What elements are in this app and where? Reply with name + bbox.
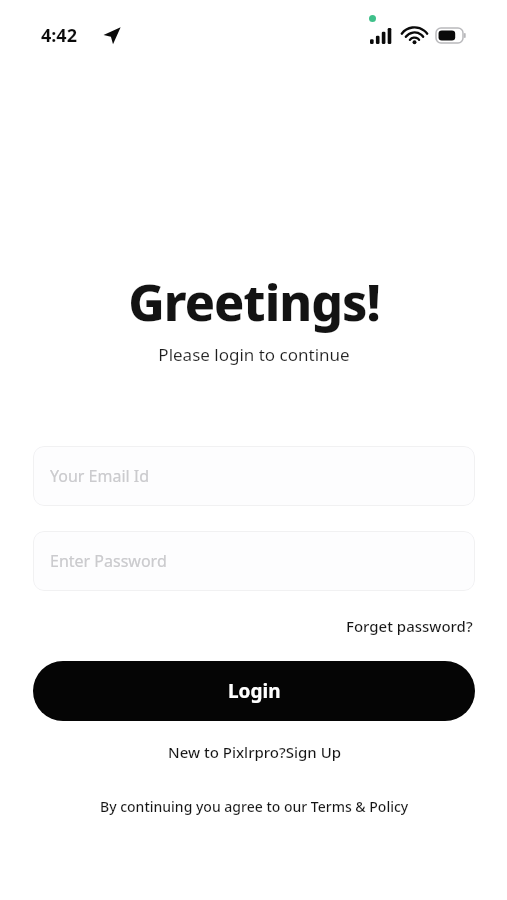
staticText: Enter Password [50,550,167,572]
button[interactable]: Your Email Id [33,446,475,506]
staticText: Forget password? [346,616,473,636]
staticText: Greetings! [128,268,380,336]
other: Wi-Fi [403,27,426,44]
other: Location active [102,26,121,45]
other: Cellular signal [370,28,394,44]
staticText: By continuing you agree to our Terms & P… [100,797,409,816]
button[interactable]: Enter Password [33,531,475,591]
other: Battery [436,28,466,43]
staticText: Your Email Id [50,465,150,487]
staticText: Login [228,678,281,704]
button[interactable]: New to Pixlrpro?Sign Up [162,737,347,767]
staticText: 4:42 [41,23,77,48]
button[interactable]: By continuing you agree to our Terms & P… [94,793,415,820]
staticText: New to Pixlrpro?Sign Up [168,742,341,762]
button[interactable]: Login [33,661,475,721]
button[interactable]: Forget password? [344,612,475,640]
staticText: Please login to continue [158,343,350,366]
